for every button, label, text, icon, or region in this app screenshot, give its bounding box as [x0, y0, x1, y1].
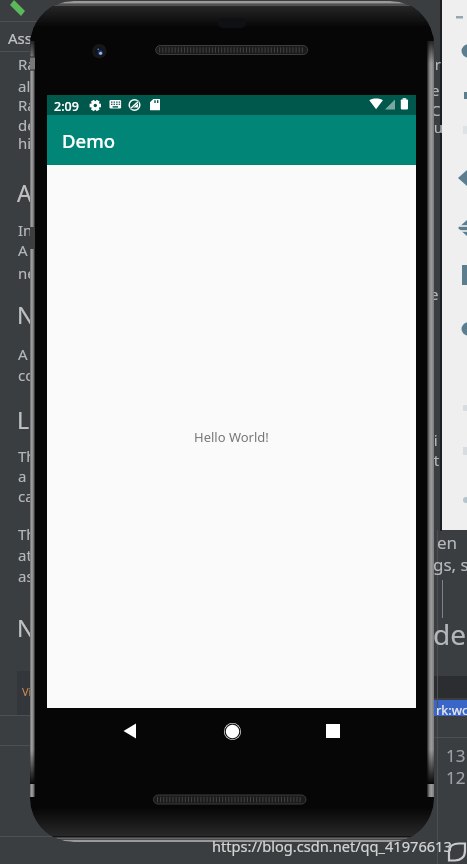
button[interactable]: Home	[214, 713, 250, 749]
staticText: en	[437, 531, 458, 554]
staticText: A	[17, 177, 32, 208]
staticText: a	[18, 466, 27, 486]
staticText: al	[18, 76, 31, 96]
staticText: Ra	[18, 54, 36, 74]
staticText: it	[430, 450, 440, 470]
staticText: ir	[431, 54, 442, 74]
staticText: 2:09	[54, 98, 79, 115]
staticText: Ra	[18, 95, 36, 115]
staticText: at	[18, 545, 32, 565]
staticText: N	[17, 612, 35, 643]
staticText: e	[431, 80, 440, 100]
staticText: N	[17, 299, 35, 330]
button[interactable]: Demo	[47, 115, 416, 165]
staticText: co	[18, 365, 35, 385]
staticText: dep	[433, 615, 467, 653]
staticText: Demo	[62, 128, 115, 153]
staticText: rk:wo	[436, 701, 467, 719]
staticText: Ass	[8, 28, 32, 48]
staticText: li	[430, 430, 438, 450]
staticText: 13	[446, 744, 466, 767]
staticText: e	[430, 284, 439, 304]
staticText: gs, s	[433, 553, 467, 576]
staticText: Th	[18, 446, 36, 466]
staticText: as	[18, 566, 34, 586]
button[interactable]: Recent apps	[315, 713, 351, 749]
staticText: A	[18, 240, 28, 260]
button[interactable]: Back	[112, 713, 148, 749]
staticText: 12	[446, 766, 466, 789]
staticText: https://blog.csdn.net/qq_41976613	[212, 836, 452, 856]
staticText: ne	[18, 263, 36, 283]
staticText: L	[17, 404, 30, 435]
staticText: Th	[18, 524, 36, 544]
staticText: Hello World!	[194, 428, 269, 446]
staticText: In	[18, 220, 33, 240]
staticText: A	[18, 344, 28, 364]
staticText: C	[431, 100, 441, 120]
staticText: hi	[18, 133, 32, 153]
staticText: de	[18, 115, 36, 135]
staticText: lu	[430, 117, 444, 137]
staticText: Vi	[22, 684, 32, 699]
staticText: ca	[18, 486, 34, 506]
